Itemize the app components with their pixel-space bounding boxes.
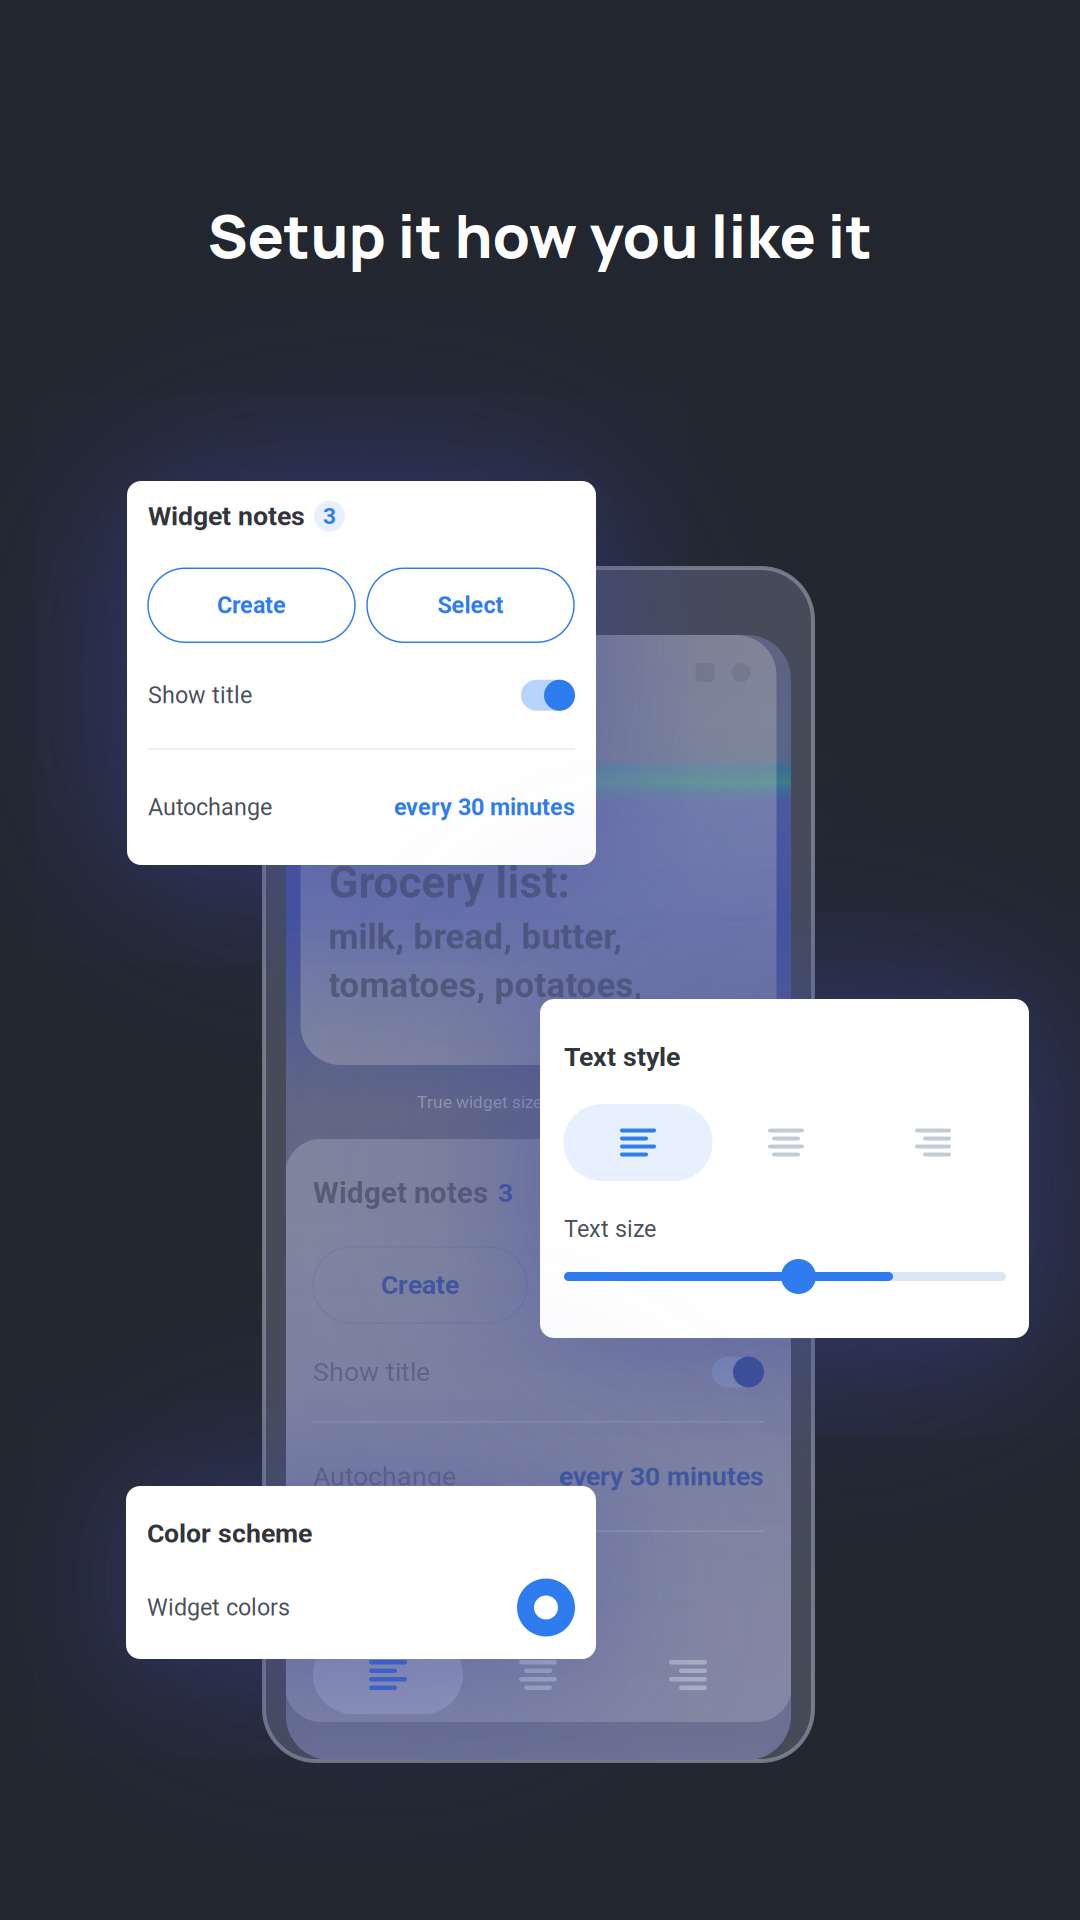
staticText: Select [437,592,503,619]
button[interactable]: Select [367,568,574,642]
staticText: True widget size on your screen [417,1092,660,1112]
button[interactable]: Widget colors [147,1568,575,1646]
staticText: Setup it how you like it [207,194,872,276]
staticText: Text size [564,1215,656,1243]
staticText: Color scheme [147,1518,312,1549]
staticText: Show title [148,682,252,709]
staticText: Show title [313,1356,430,1388]
staticText: Text style [564,1041,680,1073]
staticText: Autochange [313,1461,456,1492]
staticText: Create [217,592,286,619]
staticText: Widget notes [148,501,305,532]
button[interactable]: Create [148,568,355,642]
staticText: Widget notes [313,1176,488,1210]
staticText: every 30 minutes [559,1461,764,1492]
staticText: tomatoes, potatoes, [328,965,642,1006]
staticText: every 30 minutes [394,794,575,821]
button[interactable]: Align left [563,1104,712,1181]
staticText: Grocery list: [328,857,569,909]
button[interactable]: Align right [859,1104,1006,1181]
staticText: milk, bread, butter, [328,917,622,957]
staticText: 3 [498,1177,513,1209]
button[interactable]: Autochange [148,750,575,865]
staticText: Autochange [148,794,272,821]
button[interactable]: Show title [148,642,575,748]
staticText: 3 [323,503,336,530]
staticText: Create [381,1269,459,1301]
staticText: Widget colors [147,1594,290,1621]
button[interactable]: Align center [712,1104,859,1181]
